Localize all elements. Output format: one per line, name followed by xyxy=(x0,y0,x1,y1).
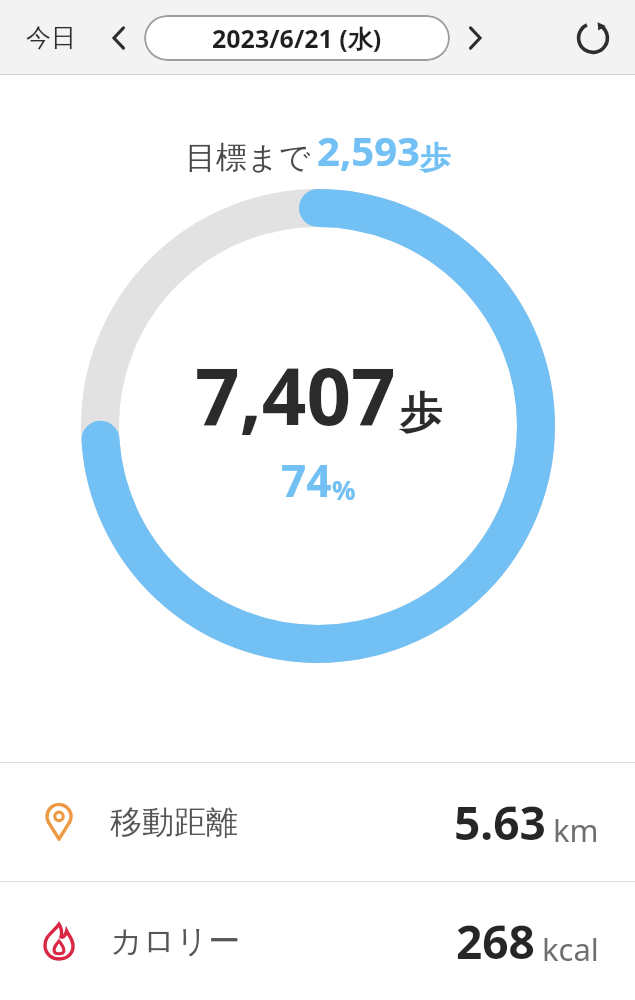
button[interactable]: Previous day xyxy=(96,15,142,61)
staticText: 268 xyxy=(456,910,535,973)
staticText: 5.63 xyxy=(454,791,546,854)
staticText: カロリー xyxy=(110,921,241,961)
staticText: 目標まで xyxy=(185,138,311,177)
button[interactable]: 今日 xyxy=(18,14,84,61)
staticText: 移動距離 xyxy=(110,802,238,842)
button[interactable]: Refresh xyxy=(567,12,619,64)
button[interactable]: Next day xyxy=(452,15,498,61)
staticText: 歩 xyxy=(420,139,450,177)
staticText: 歩 xyxy=(400,387,442,440)
staticText: 74 xyxy=(281,450,332,510)
button[interactable]: 2023/6/21 (水) xyxy=(144,15,450,61)
staticText: 2,593 xyxy=(317,123,420,177)
button[interactable]: カロリー xyxy=(0,882,635,1000)
staticText: 今日 xyxy=(26,22,76,53)
staticText: 2023/6/21 (水) xyxy=(212,21,382,55)
button[interactable]: 移動距離 xyxy=(0,763,635,881)
staticText: km xyxy=(553,809,599,851)
staticText: 7,407 xyxy=(195,342,396,448)
staticText: % xyxy=(332,472,356,507)
staticText: kcal xyxy=(542,928,599,970)
